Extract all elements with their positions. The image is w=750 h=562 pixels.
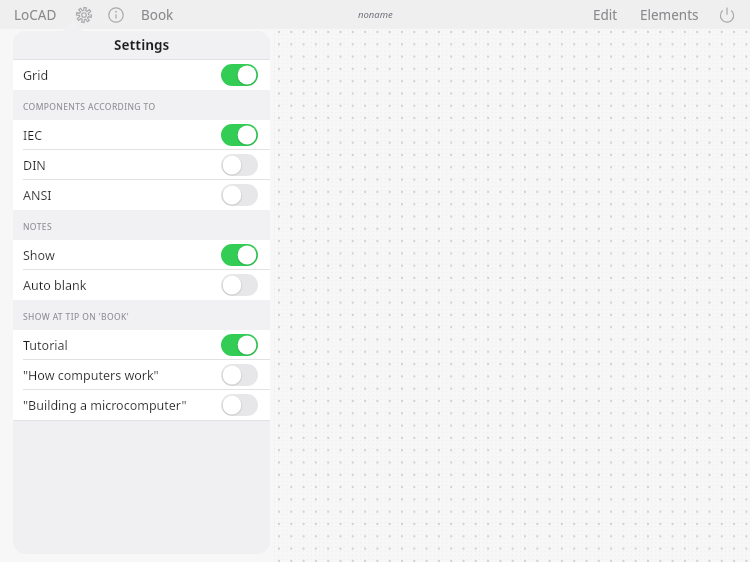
staticText: "Building a microcomputer" — [23, 397, 187, 414]
staticText: SHOW AT TIP ON 'BOOK' — [23, 311, 129, 323]
button[interactable]: IEC — [13, 120, 270, 150]
staticText: DIN — [23, 157, 46, 174]
button[interactable]: "How computers work" — [13, 360, 270, 390]
button[interactable]: Auto blank — [13, 270, 270, 300]
staticText: LoCAD — [14, 6, 57, 24]
button[interactable]: Tutorial — [13, 330, 270, 360]
button[interactable]: Edit — [590, 6, 621, 24]
button[interactable]: "Building a microcomputer" — [13, 390, 270, 420]
staticText: Tutorial — [23, 337, 68, 354]
button[interactable]: Show — [13, 240, 270, 270]
staticText: NOTES — [23, 221, 52, 233]
staticText: noname — [358, 8, 393, 21]
staticText: Elements — [640, 6, 699, 24]
staticText: COMPONENTS ACCORDING TO — [23, 101, 156, 113]
button[interactable]: Power — [716, 4, 738, 26]
button[interactable]: DIN — [13, 150, 270, 180]
staticText: Settings — [114, 36, 170, 54]
staticText: Grid — [23, 67, 49, 84]
button[interactable]: Elements — [637, 6, 702, 24]
staticText: Show — [23, 247, 55, 264]
staticText: Auto blank — [23, 277, 87, 294]
staticText: IEC — [23, 127, 43, 144]
staticText: "How computers work" — [23, 367, 159, 384]
button[interactable]: Book — [139, 6, 176, 24]
staticText: ANSI — [23, 187, 52, 204]
staticText: Book — [141, 6, 174, 24]
button[interactable]: LoCAD — [12, 6, 59, 24]
staticText: Edit — [593, 6, 618, 24]
button[interactable]: Info — [105, 4, 127, 26]
button[interactable]: Settings — [73, 4, 95, 26]
button[interactable]: ANSI — [13, 180, 270, 210]
button[interactable]: Grid — [13, 60, 270, 90]
